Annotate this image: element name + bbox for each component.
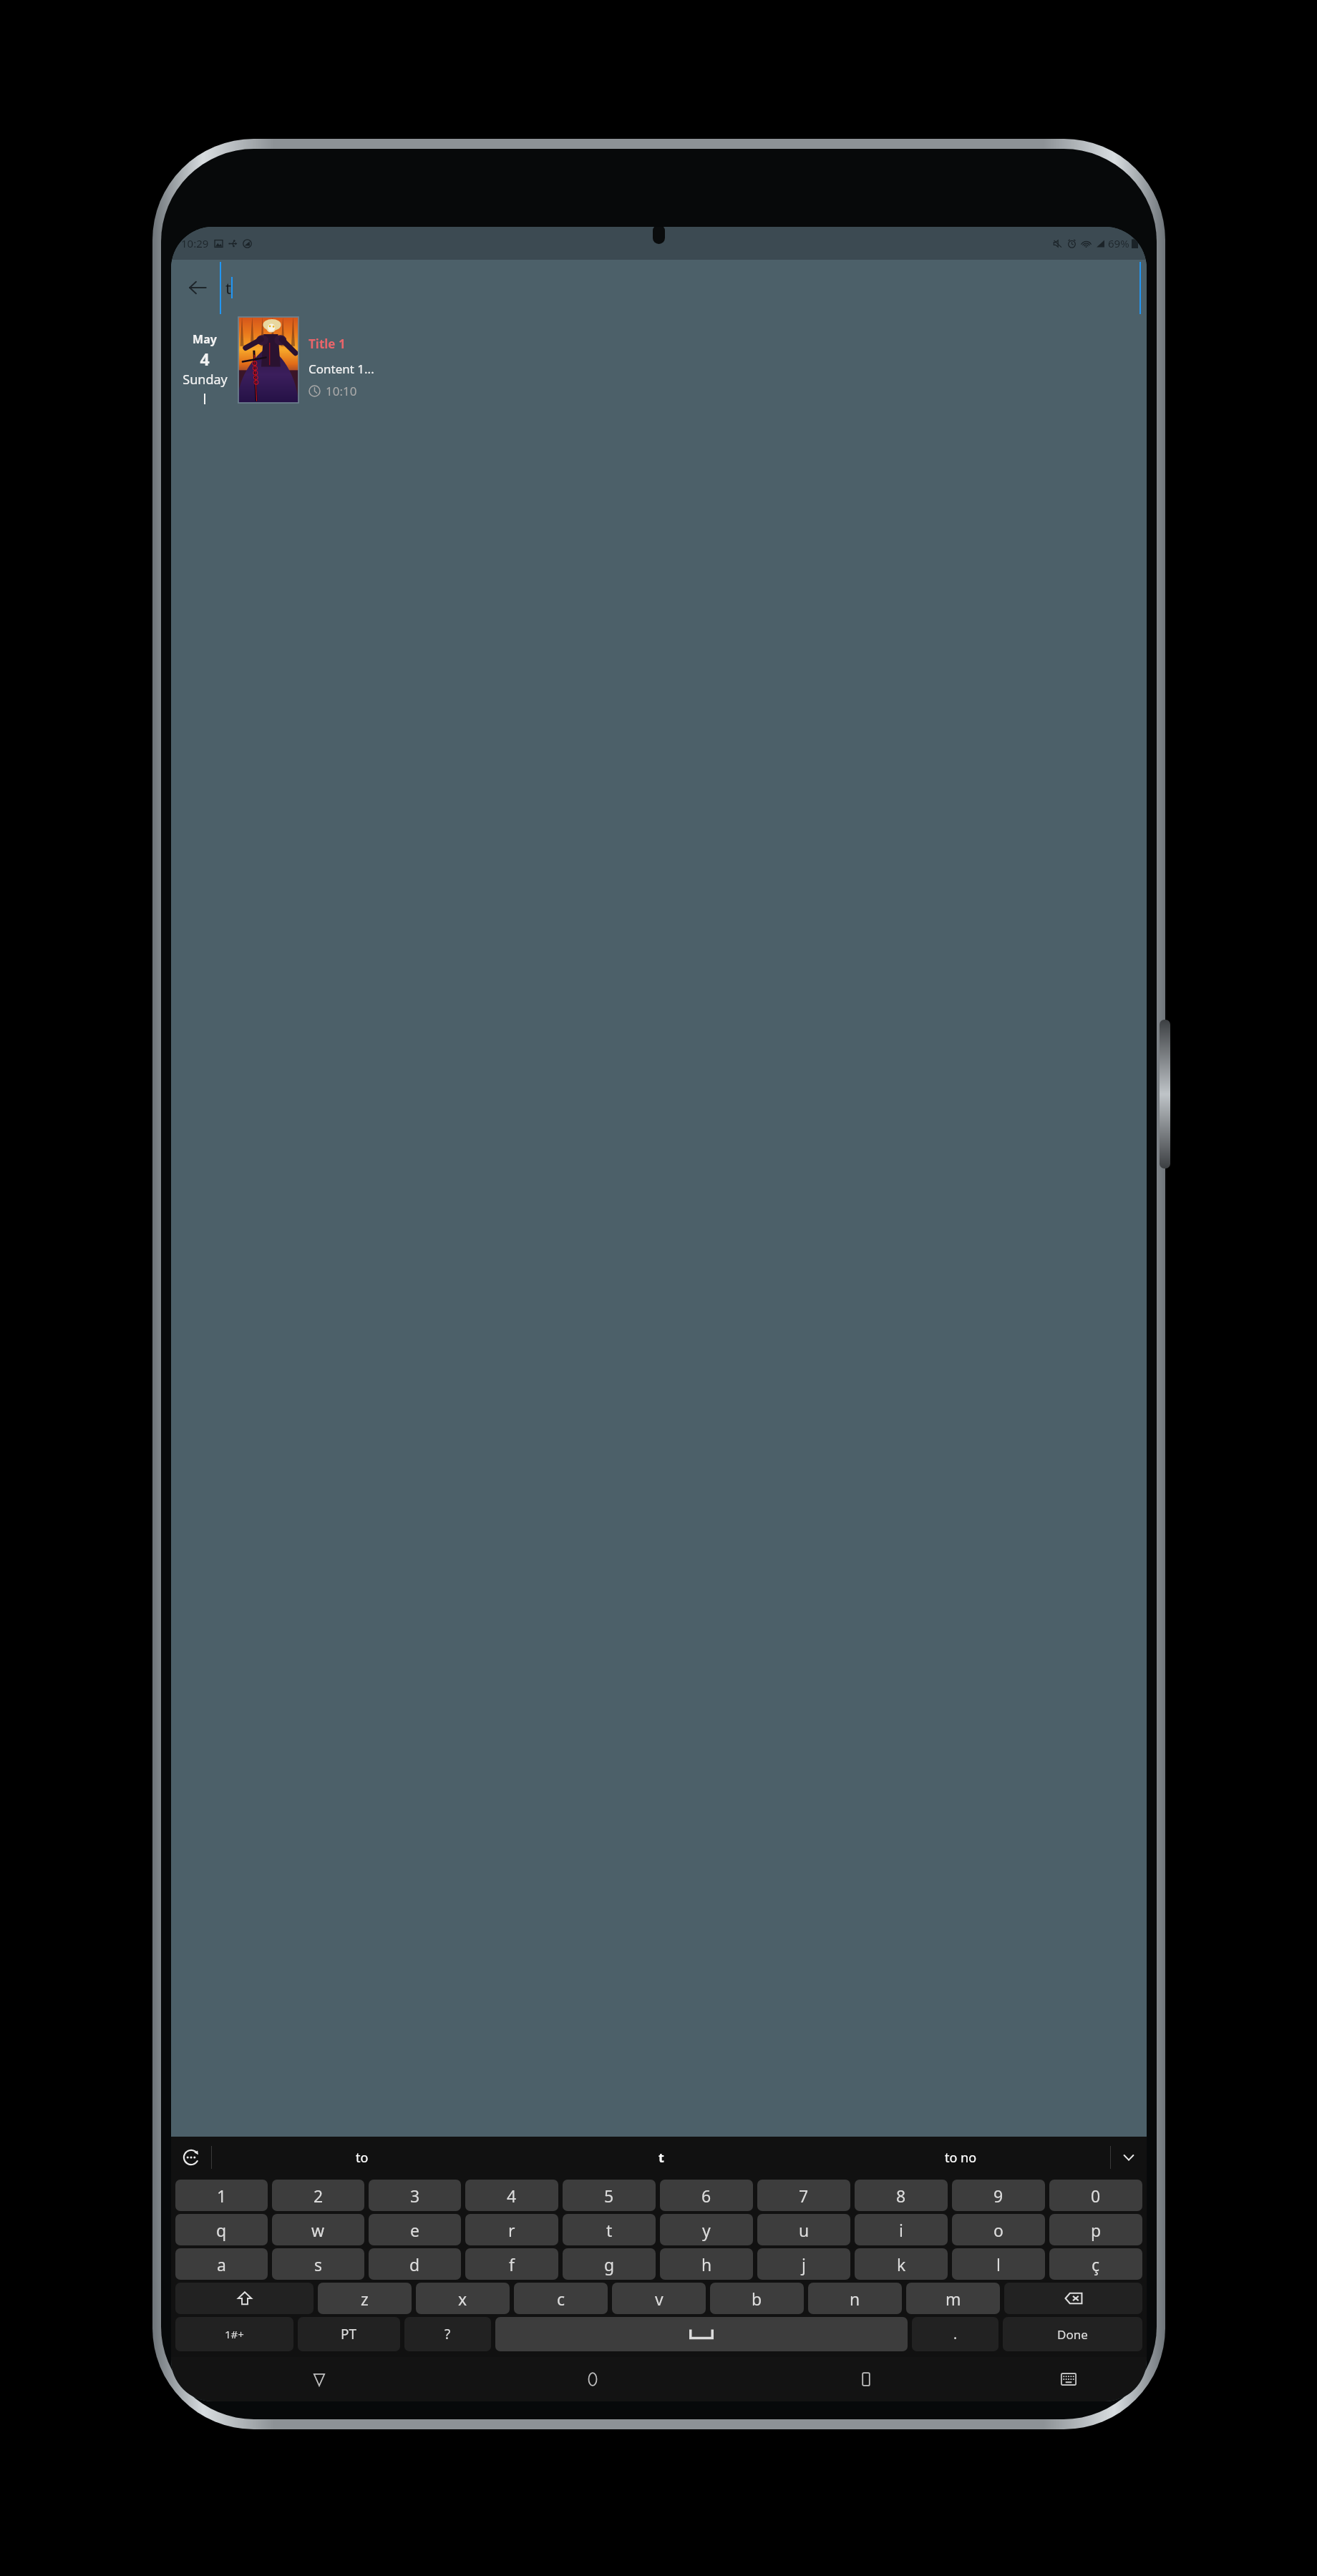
- button[interactable]: ?: [404, 2317, 491, 2351]
- staticText: n: [850, 2288, 860, 2310]
- button[interactable]: c: [514, 2283, 608, 2314]
- button[interactable]: j: [757, 2248, 850, 2280]
- button[interactable]: Emoji: [171, 2137, 211, 2178]
- button[interactable]: Back: [301, 2361, 338, 2398]
- button[interactable]: Collapse keyboard: [1111, 2137, 1147, 2178]
- staticText: w: [311, 2219, 325, 2241]
- staticText: i: [899, 2219, 903, 2241]
- button[interactable]: p: [1049, 2214, 1142, 2245]
- button[interactable]: [238, 317, 298, 403]
- button[interactable]: 8: [855, 2180, 948, 2211]
- button[interactable]: ç: [1049, 2248, 1142, 2280]
- button[interactable]: Backspace: [1004, 2283, 1142, 2314]
- staticText: 4: [200, 348, 210, 370]
- staticText: f: [509, 2253, 515, 2275]
- staticText: 9: [993, 2185, 1003, 2207]
- button[interactable]: 2: [272, 2180, 364, 2211]
- staticText: May: [193, 331, 217, 347]
- staticText: u: [799, 2219, 810, 2241]
- button[interactable]: w: [272, 2214, 364, 2245]
- staticText: 10:29: [181, 236, 209, 250]
- button[interactable]: o: [952, 2214, 1045, 2245]
- staticText: 7: [799, 2185, 809, 2207]
- staticText: 3: [410, 2185, 420, 2207]
- button[interactable]: .: [912, 2317, 998, 2351]
- button[interactable]: b: [710, 2283, 804, 2314]
- button[interactable]: z: [318, 2283, 412, 2314]
- staticText: 10:10: [326, 383, 357, 399]
- staticText: d: [409, 2253, 420, 2275]
- staticText: o: [993, 2219, 1003, 2241]
- button[interactable]: Done: [1003, 2317, 1142, 2351]
- staticText: k: [897, 2253, 906, 2275]
- button[interactable]: Shift: [175, 2283, 314, 2314]
- staticText: 1: [217, 2185, 227, 2207]
- button[interactable]: 0: [1049, 2180, 1142, 2211]
- button[interactable]: 1: [175, 2180, 268, 2211]
- button[interactable]: h: [660, 2248, 753, 2280]
- button[interactable]: Recents: [847, 2361, 885, 2398]
- staticText: x: [458, 2288, 467, 2310]
- staticText: t: [225, 277, 231, 298]
- button[interactable]: 9: [952, 2180, 1045, 2211]
- button[interactable]: Space: [495, 2317, 908, 2351]
- button[interactable]: s: [272, 2248, 364, 2280]
- staticText: q: [216, 2219, 227, 2241]
- staticText: l: [996, 2253, 1001, 2275]
- staticText: e: [410, 2219, 419, 2241]
- button[interactable]: 6: [660, 2180, 753, 2211]
- button[interactable]: 5: [563, 2180, 656, 2211]
- button[interactable]: y: [660, 2214, 753, 2245]
- button[interactable]: d: [369, 2248, 461, 2280]
- button[interactable]: Home: [574, 2361, 611, 2398]
- button[interactable]: Back: [178, 268, 217, 307]
- staticText: 4: [507, 2185, 517, 2207]
- staticText: t: [606, 2219, 613, 2241]
- staticText: c: [557, 2288, 565, 2310]
- button[interactable]: 1#+: [175, 2317, 293, 2351]
- button[interactable]: 4: [465, 2180, 558, 2211]
- staticText: 6: [701, 2185, 711, 2207]
- button[interactable]: x: [416, 2283, 510, 2314]
- staticText: Title 1: [308, 336, 346, 352]
- button[interactable]: r: [465, 2214, 558, 2245]
- staticText: 69%: [1108, 236, 1129, 250]
- button[interactable]: m: [906, 2283, 1000, 2314]
- button[interactable]: 7: [757, 2180, 850, 2211]
- button[interactable]: PT: [298, 2317, 400, 2351]
- staticText: .: [953, 2325, 958, 2343]
- button[interactable]: 3: [369, 2180, 461, 2211]
- staticText: r: [508, 2219, 515, 2241]
- staticText: Content 1...: [308, 361, 374, 377]
- button[interactable]: u: [757, 2214, 850, 2245]
- button[interactable]: l: [952, 2248, 1045, 2280]
- button[interactable]: f: [465, 2248, 558, 2280]
- staticText: 1#+: [225, 2327, 244, 2341]
- staticText: ?: [444, 2325, 451, 2343]
- button[interactable]: k: [855, 2248, 948, 2280]
- button[interactable]: i: [855, 2214, 948, 2245]
- staticText: to: [356, 2149, 369, 2167]
- button[interactable]: v: [612, 2283, 706, 2314]
- staticText: a: [217, 2253, 226, 2275]
- staticText: ç: [1092, 2253, 1100, 2275]
- button[interactable]: e: [369, 2214, 461, 2245]
- button[interactable]: Hide keyboard: [1050, 2361, 1087, 2398]
- button[interactable]: Title 1: [308, 336, 1147, 404]
- button[interactable]: n: [808, 2283, 902, 2314]
- staticText: Done: [1057, 2326, 1088, 2343]
- button[interactable]: q: [175, 2214, 268, 2245]
- button[interactable]: t: [512, 2137, 811, 2178]
- button[interactable]: to: [212, 2137, 512, 2178]
- staticText: h: [701, 2253, 712, 2275]
- button[interactable]: to no: [811, 2137, 1110, 2178]
- button[interactable]: t: [220, 260, 1141, 316]
- button[interactable]: t: [563, 2214, 656, 2245]
- staticText: g: [604, 2253, 615, 2275]
- staticText: v: [655, 2288, 664, 2310]
- staticText: to no: [945, 2149, 977, 2167]
- staticText: 0: [1091, 2185, 1101, 2207]
- staticText: t: [658, 2149, 664, 2167]
- button[interactable]: a: [175, 2248, 268, 2280]
- button[interactable]: g: [563, 2248, 656, 2280]
